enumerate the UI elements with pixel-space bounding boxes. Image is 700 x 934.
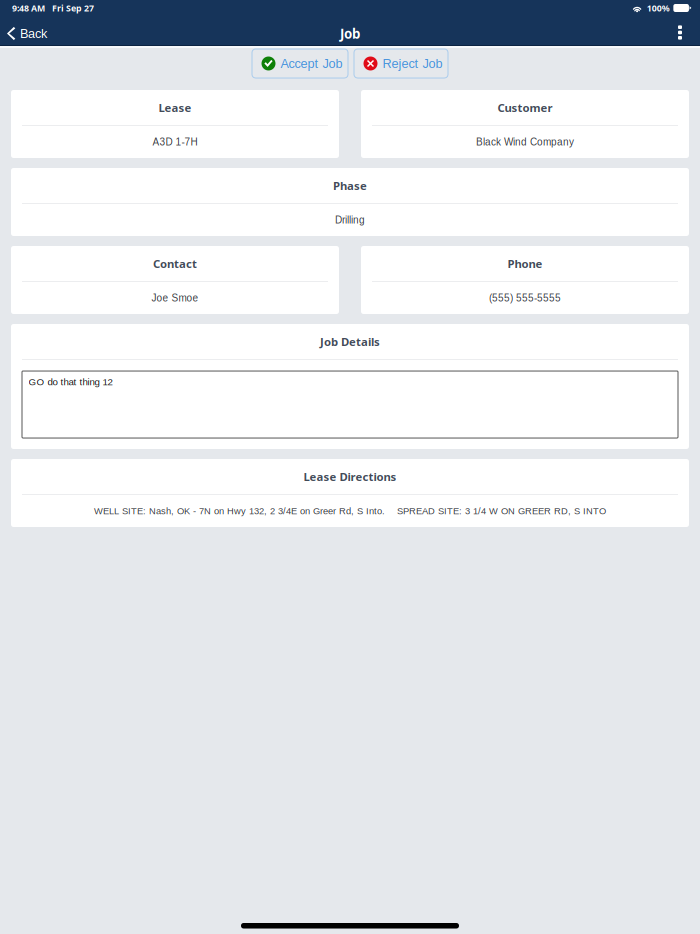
- staticText: Job: [340, 24, 360, 43]
- button[interactable]: Accept Job: [252, 49, 348, 78]
- button[interactable]: Back: [1, 22, 55, 45]
- staticText: Back: [20, 26, 47, 41]
- staticText: Phase: [333, 178, 367, 193]
- staticText: Black Wind Company: [476, 136, 574, 148]
- staticText: Accept Job: [280, 56, 342, 71]
- staticText: 100%: [647, 2, 670, 14]
- staticText: Job Details: [320, 334, 380, 349]
- staticText: Drilling: [335, 214, 365, 226]
- button[interactable]: Reject Job: [354, 49, 448, 78]
- staticText: 9:48 AM: [12, 2, 45, 14]
- staticText: Contact: [153, 256, 197, 271]
- staticText: Reject Job: [382, 56, 442, 71]
- staticText: Fri Sep 27: [52, 2, 94, 14]
- staticText: A3D 1-7H: [152, 136, 197, 148]
- button[interactable]: More options: [669, 22, 691, 45]
- staticText: Joe Smoe: [151, 292, 198, 304]
- staticText: WELL SITE: Nash, OK - 7N on Hwy 132, 2 3…: [94, 506, 606, 516]
- staticText: (555) 555-5555: [489, 292, 561, 304]
- staticText: Phone: [507, 256, 542, 271]
- staticText: Lease Directions: [303, 469, 396, 484]
- staticText: Lease: [158, 100, 191, 115]
- staticText: Customer: [497, 100, 552, 115]
- staticText: GO do that thing 12: [28, 376, 112, 387]
